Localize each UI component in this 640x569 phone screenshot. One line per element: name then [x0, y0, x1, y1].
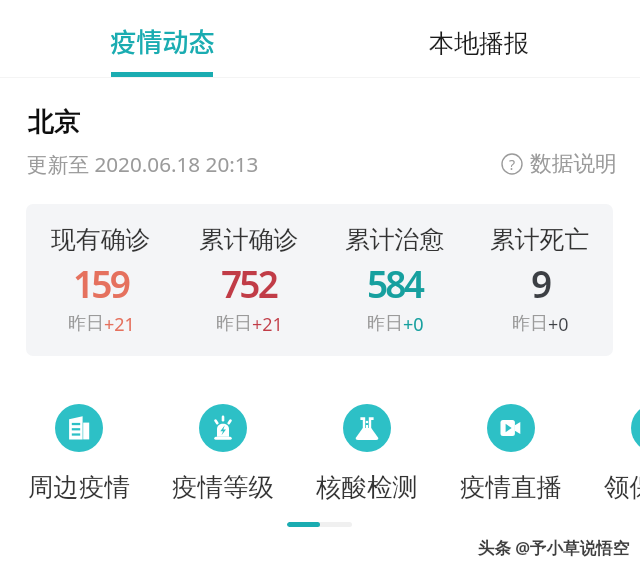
- staticText: 累计治愈: [345, 224, 445, 255]
- staticText: 昨日: [68, 312, 104, 335]
- button[interactable]: 本地播报: [320, 0, 640, 78]
- staticText: 9: [531, 258, 550, 308]
- staticText: 核酸检测: [316, 471, 418, 503]
- button[interactable]: 领保服务: [583, 404, 640, 503]
- button[interactable]: 累计治愈: [322, 204, 468, 356]
- staticText: 累计死亡: [490, 224, 590, 255]
- staticText: 领保服务: [604, 471, 640, 503]
- staticText: +21: [252, 312, 283, 337]
- staticText: 584: [367, 258, 423, 308]
- staticText: 北京: [28, 106, 80, 139]
- staticText: +0: [548, 312, 569, 337]
- staticText: 更新至 2020.06.18 20:13: [27, 150, 259, 178]
- staticText: 752: [221, 258, 277, 308]
- other: 周边疫情: [55, 404, 103, 452]
- button[interactable]: 现有确诊: [28, 204, 174, 356]
- staticText: 疫情直播: [460, 471, 562, 503]
- staticText: 昨日: [367, 312, 403, 335]
- staticText: +21: [104, 312, 135, 337]
- button[interactable]: 疫情等级: [151, 404, 295, 503]
- staticText: ?: [509, 155, 516, 174]
- button[interactable]: 疫情动态: [0, 0, 320, 78]
- other: 核酸检测: [343, 404, 391, 452]
- button[interactable]: 累计确诊: [176, 204, 322, 356]
- staticText: 疫情等级: [172, 471, 274, 503]
- staticText: 数据说明: [530, 150, 617, 177]
- staticText: 周边疫情: [28, 471, 130, 503]
- staticText: 昨日: [512, 312, 548, 335]
- other: 疫情等级: [199, 404, 247, 452]
- button[interactable]: 数据说明: [500, 150, 617, 177]
- button[interactable]: 疫情直播: [439, 404, 583, 503]
- button[interactable]: 周边疫情: [7, 404, 151, 503]
- staticText: 本地播报: [429, 28, 529, 59]
- staticText: 现有确诊: [51, 224, 151, 255]
- staticText: 头条 @予小草说悟空: [478, 536, 630, 559]
- staticText: 疫情动态: [110, 22, 215, 60]
- other: 疫情直播: [487, 404, 535, 452]
- button[interactable]: 累计死亡: [467, 204, 613, 356]
- staticText: 累计确诊: [199, 224, 299, 255]
- button[interactable]: 核酸检测: [295, 404, 439, 503]
- staticText: 昨日: [216, 312, 252, 335]
- staticText: +0: [403, 312, 424, 337]
- staticText: 159: [73, 258, 129, 308]
- other: 领保服务: [631, 404, 640, 452]
